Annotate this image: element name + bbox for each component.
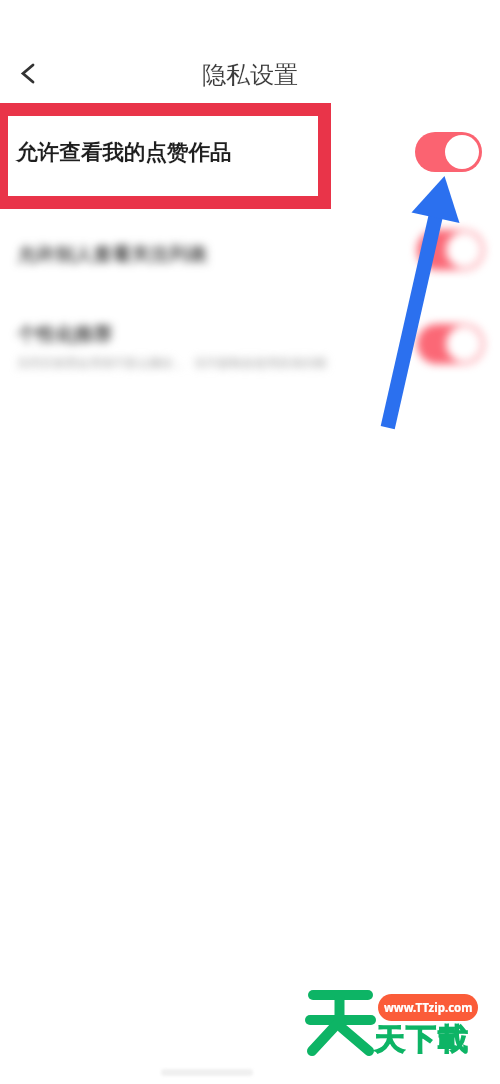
staticText: 关闭后推荐会变得不那么懂你， 但不影响你使用其他功能 [17,354,327,370]
button[interactable]: Personalised recommendations [417,324,484,364]
button[interactable]: 个性化推荐 [0,303,500,398]
button[interactable]: 允许别人查看关注列表 [0,208,500,303]
button[interactable]: Allow others to view my following list [417,230,484,270]
button[interactable]: Allow others to view the videos I liked [415,132,482,172]
staticText: 允许别人查看关注列表 [17,243,207,267]
staticText: 个性化推荐 [17,323,112,347]
button[interactable]: Back [6,51,50,95]
staticText: 允许查看我的点赞作品 [16,139,231,166]
staticText: 天下載 [374,1021,469,1059]
button[interactable]: 允许查看我的点赞作品 [0,103,500,208]
staticText: www.TTzip.com [384,1000,473,1016]
staticText: 隐私设置 [202,60,298,90]
